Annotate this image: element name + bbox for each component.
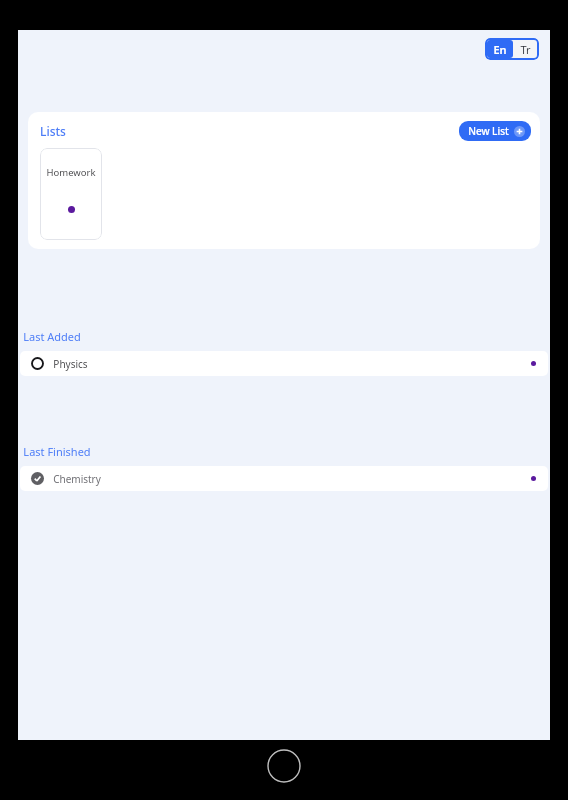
staticText: Chemistry <box>53 472 101 486</box>
button[interactable]: Chemistry <box>20 466 548 491</box>
button[interactable]: Physics <box>20 351 548 376</box>
button[interactable]: Homework <box>40 148 102 240</box>
staticText: En <box>493 42 507 57</box>
button[interactable]: New List <box>459 121 531 141</box>
staticText: Lists <box>40 123 66 139</box>
staticText: Tr <box>520 42 531 57</box>
staticText: Physics <box>53 357 88 371</box>
button[interactable]: Tr <box>513 40 537 58</box>
button[interactable]: Home <box>267 749 301 783</box>
button[interactable]: En <box>487 40 513 58</box>
staticText: Homework <box>46 166 96 179</box>
staticText: New List <box>468 124 509 138</box>
staticText: Last Finished <box>23 444 91 459</box>
staticText: Last Added <box>23 329 81 344</box>
